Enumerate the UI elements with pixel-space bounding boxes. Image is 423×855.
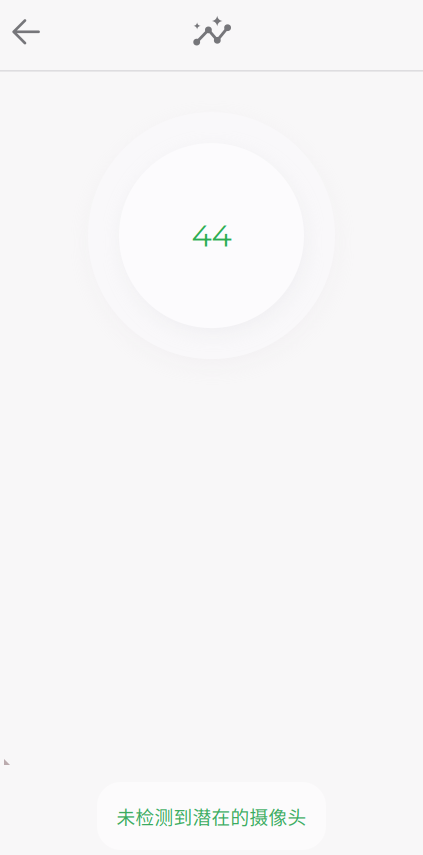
staticText: 未检测到潜在的摄像头 xyxy=(116,802,306,829)
staticText: 44 xyxy=(191,217,231,254)
button[interactable]: Back xyxy=(0,13,50,57)
button[interactable]: 未检测到潜在的摄像头 xyxy=(97,782,326,850)
button[interactable]: Detection chart xyxy=(182,10,240,60)
